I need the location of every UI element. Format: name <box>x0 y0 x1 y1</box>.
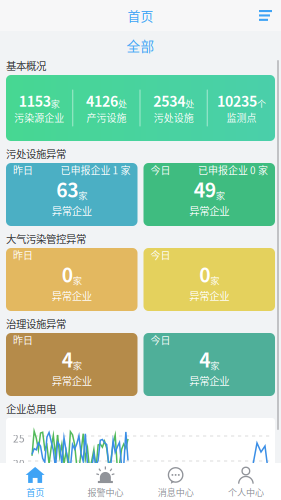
staticText: 63 <box>56 175 78 203</box>
staticText: 治理设施异常 <box>6 316 66 331</box>
staticText: 处 <box>118 97 127 110</box>
staticText: 企业总用电 <box>6 401 56 416</box>
staticText: 20 <box>13 456 25 470</box>
staticText: 家 <box>216 188 225 202</box>
staticText: 家 <box>51 97 60 110</box>
button[interactable]: 今日 <box>143 248 275 311</box>
staticText: 今日 <box>150 163 170 177</box>
staticText: 昨日 <box>13 333 33 347</box>
staticText: 今日 <box>150 333 170 347</box>
button[interactable]: 消息中心 <box>140 460 211 500</box>
staticText: 个人中心 <box>228 485 264 498</box>
staticText: 4 <box>62 345 73 373</box>
staticText: 异常企业 <box>52 203 92 218</box>
staticText: 污处设施 <box>154 110 194 125</box>
staticText: 家 <box>78 188 87 202</box>
button[interactable]: 昨日 <box>6 248 137 311</box>
staticText: 家 <box>210 358 219 372</box>
staticText: 49 <box>194 175 216 203</box>
staticText: 家 <box>210 273 219 287</box>
staticText: 4126 <box>86 90 118 111</box>
button[interactable]: 今日 <box>143 163 275 226</box>
staticText: 首页 <box>127 6 153 25</box>
staticText: 首页 <box>26 485 44 498</box>
staticText: 污染源企业 <box>14 110 64 125</box>
button[interactable]: 个人中心 <box>211 460 281 500</box>
staticText: 产污设施 <box>86 110 126 125</box>
staticText: 4 <box>199 345 210 373</box>
staticText: 基本概况 <box>6 58 46 73</box>
staticText: 10235 <box>217 90 257 111</box>
staticText: 处 <box>185 97 194 110</box>
staticText: 昨日 <box>13 248 33 262</box>
staticText: 已申报企业 1 家 <box>60 163 130 177</box>
button[interactable]: 昨日 <box>6 163 137 226</box>
staticText: 异常企业 <box>189 373 229 388</box>
staticText: 个 <box>257 97 266 110</box>
staticText: 今日 <box>150 248 170 262</box>
staticText: 0 <box>62 260 73 288</box>
staticText: 异常企业 <box>52 288 92 303</box>
staticText: 已申报企业 0 家 <box>198 163 268 177</box>
button[interactable]: 昨日 <box>6 333 137 396</box>
staticText: 家 <box>73 273 82 287</box>
staticText: 昨日 <box>13 163 33 177</box>
staticText: 0 <box>199 260 210 288</box>
staticText: 异常企业 <box>189 288 229 303</box>
staticText: 异常企业 <box>189 203 229 218</box>
button[interactable]: 首页 <box>0 460 70 500</box>
staticText: 报警中心 <box>87 485 123 498</box>
staticText: 监测点 <box>226 110 256 125</box>
staticText: 2534 <box>153 90 185 111</box>
staticText: 全部 <box>126 36 154 55</box>
button[interactable]: 今日 <box>143 333 275 396</box>
staticText: 25 <box>13 431 25 445</box>
staticText: 家 <box>73 358 82 372</box>
staticText: 异常企业 <box>52 373 92 388</box>
staticText: 污处设施异常 <box>6 146 66 161</box>
staticText: 1153 <box>19 90 51 111</box>
staticText: 消息中心 <box>158 485 194 498</box>
staticText: 大气污染管控异常 <box>6 231 86 246</box>
button[interactable]: 报警中心 <box>70 460 140 500</box>
button[interactable]: Menu <box>250 2 281 29</box>
